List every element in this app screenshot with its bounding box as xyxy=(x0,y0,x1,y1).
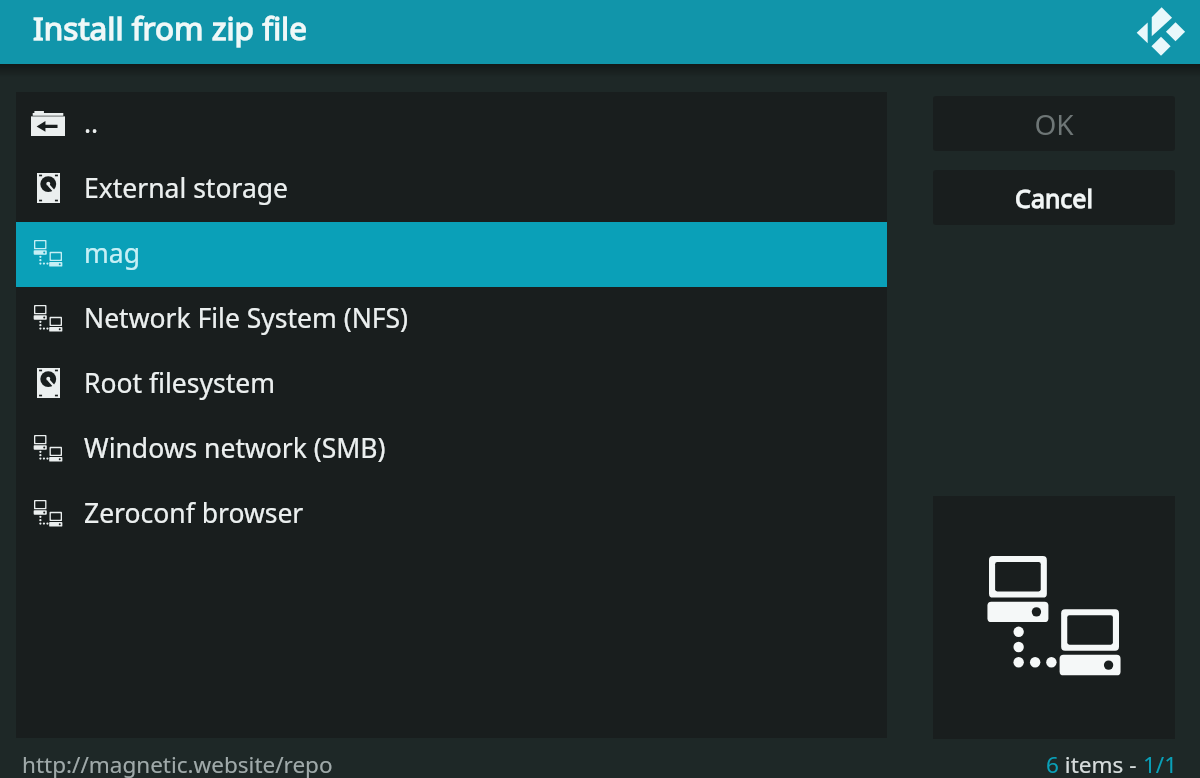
button[interactable]: Zeroconf browser xyxy=(16,482,887,547)
staticText: Windows network (SMB) xyxy=(84,430,386,466)
staticText: Network File System (NFS) xyxy=(84,300,409,336)
staticText: Install from zip file xyxy=(33,6,307,49)
button[interactable]: mag xyxy=(16,222,887,287)
button[interactable]: External storage xyxy=(16,157,887,222)
button[interactable]: OK xyxy=(933,96,1175,151)
staticText: .. xyxy=(84,105,99,141)
staticText: Cancel xyxy=(1015,181,1093,215)
staticText: External storage xyxy=(84,170,288,206)
staticText: Zeroconf browser xyxy=(84,495,304,531)
staticText: 6 xyxy=(1046,749,1059,778)
button[interactable]: Cancel xyxy=(933,170,1175,225)
button[interactable]: Windows network (SMB) xyxy=(16,417,887,482)
staticText: Root filesystem xyxy=(84,365,275,401)
staticText: OK xyxy=(1034,105,1074,143)
button[interactable]: Kodi home xyxy=(1130,3,1188,61)
staticText: http://magnetic.website/repo xyxy=(22,749,333,778)
button[interactable]: Network File System (NFS) xyxy=(16,287,887,352)
staticText: items - xyxy=(1059,749,1143,778)
button[interactable]: Root filesystem xyxy=(16,352,887,417)
staticText: mag xyxy=(84,235,140,271)
staticText: 1/1 xyxy=(1143,749,1178,778)
button[interactable]: .. xyxy=(16,92,887,157)
